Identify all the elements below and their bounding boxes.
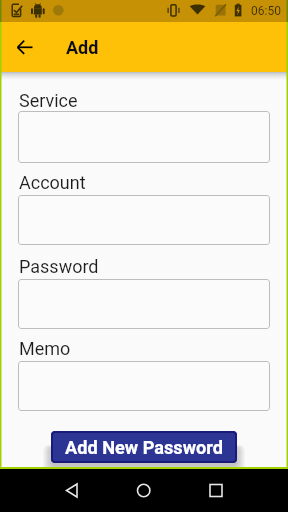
staticText: Add New Password — [65, 437, 223, 458]
button[interactable]: Back — [11, 33, 39, 61]
staticText: Service — [19, 90, 78, 111]
button[interactable] — [18, 279, 270, 329]
button[interactable]: Add New Password — [51, 431, 237, 463]
staticText: Add — [66, 37, 99, 58]
button[interactable] — [18, 195, 270, 245]
button[interactable] — [18, 111, 270, 163]
staticText: Memo — [19, 338, 71, 359]
staticText: Account — [19, 172, 86, 193]
button[interactable] — [18, 361, 270, 411]
staticText: 06:50 — [251, 4, 281, 18]
staticText: Password — [19, 256, 99, 277]
